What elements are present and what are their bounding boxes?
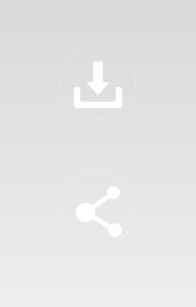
button[interactable]: Share: [60, 171, 135, 246]
button[interactable]: Download: [60, 44, 135, 119]
